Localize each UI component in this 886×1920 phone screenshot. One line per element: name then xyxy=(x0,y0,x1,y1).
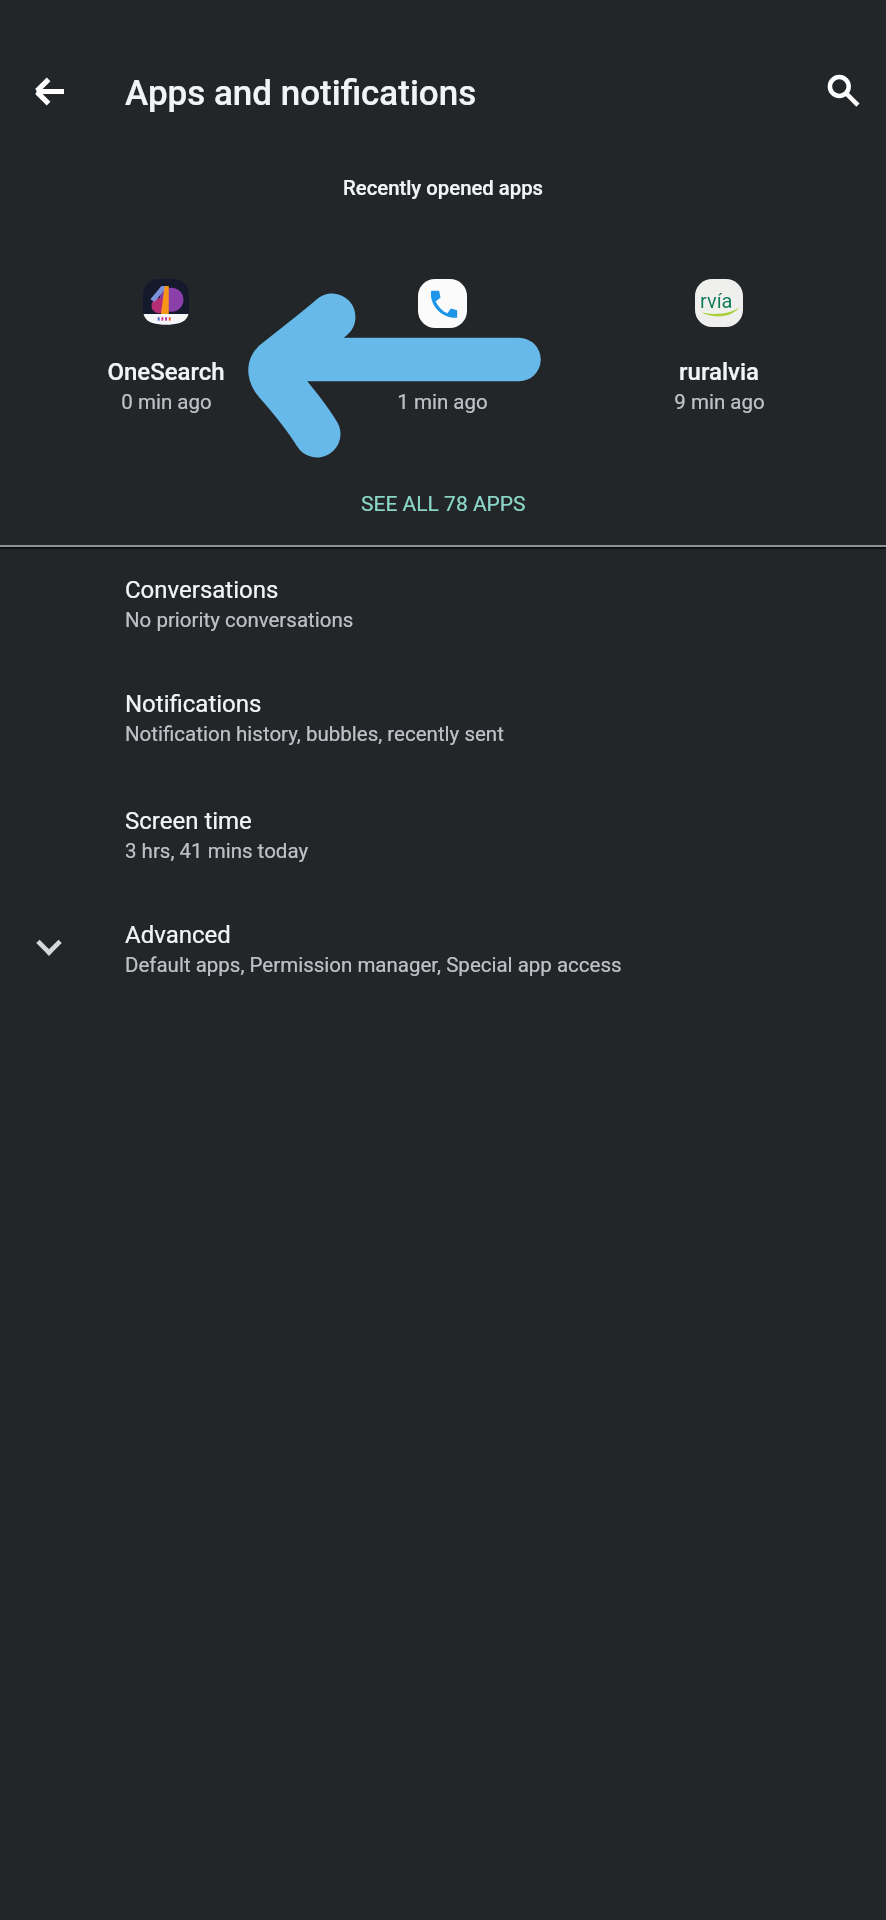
button[interactable]: Conversations xyxy=(0,559,886,673)
staticText: Apps and notifications xyxy=(125,73,477,114)
button[interactable]: Notifications xyxy=(0,673,886,787)
button[interactable]: Screen time xyxy=(0,790,886,904)
button[interactable]: Expand Advanced xyxy=(27,915,73,961)
staticText: rvía xyxy=(700,289,733,312)
staticText: Phone xyxy=(408,358,477,386)
button[interactable]: OneSearch xyxy=(61,264,271,424)
staticText: Default apps, Permission manager, Specia… xyxy=(125,953,622,977)
staticText: ruralvia xyxy=(679,358,759,386)
staticText: 9 min ago xyxy=(674,390,765,414)
button[interactable]: Phone xyxy=(337,264,547,424)
button[interactable]: Advanced xyxy=(0,904,886,1018)
button[interactable]: rvía xyxy=(614,264,824,424)
staticText: Notifications xyxy=(125,690,262,718)
button[interactable]: SEE ALL 78 APPS xyxy=(0,473,886,535)
staticText: Recently opened apps xyxy=(0,176,886,200)
staticText: OneSearch xyxy=(107,358,225,386)
staticText: SEE ALL 78 APPS xyxy=(361,492,526,517)
staticText: 1 min ago xyxy=(397,390,488,414)
staticText: Notification history, bubbles, recently … xyxy=(125,722,504,746)
staticText: Conversations xyxy=(125,576,279,604)
staticText: 0 min ago xyxy=(121,390,212,414)
button[interactable]: Back xyxy=(16,57,84,125)
button[interactable]: Search xyxy=(809,58,877,126)
staticText: 3 hrs, 41 mins today xyxy=(125,839,309,863)
staticText: Advanced xyxy=(125,921,231,949)
staticText: Screen time xyxy=(125,807,252,835)
staticText: No priority conversations xyxy=(125,608,354,632)
